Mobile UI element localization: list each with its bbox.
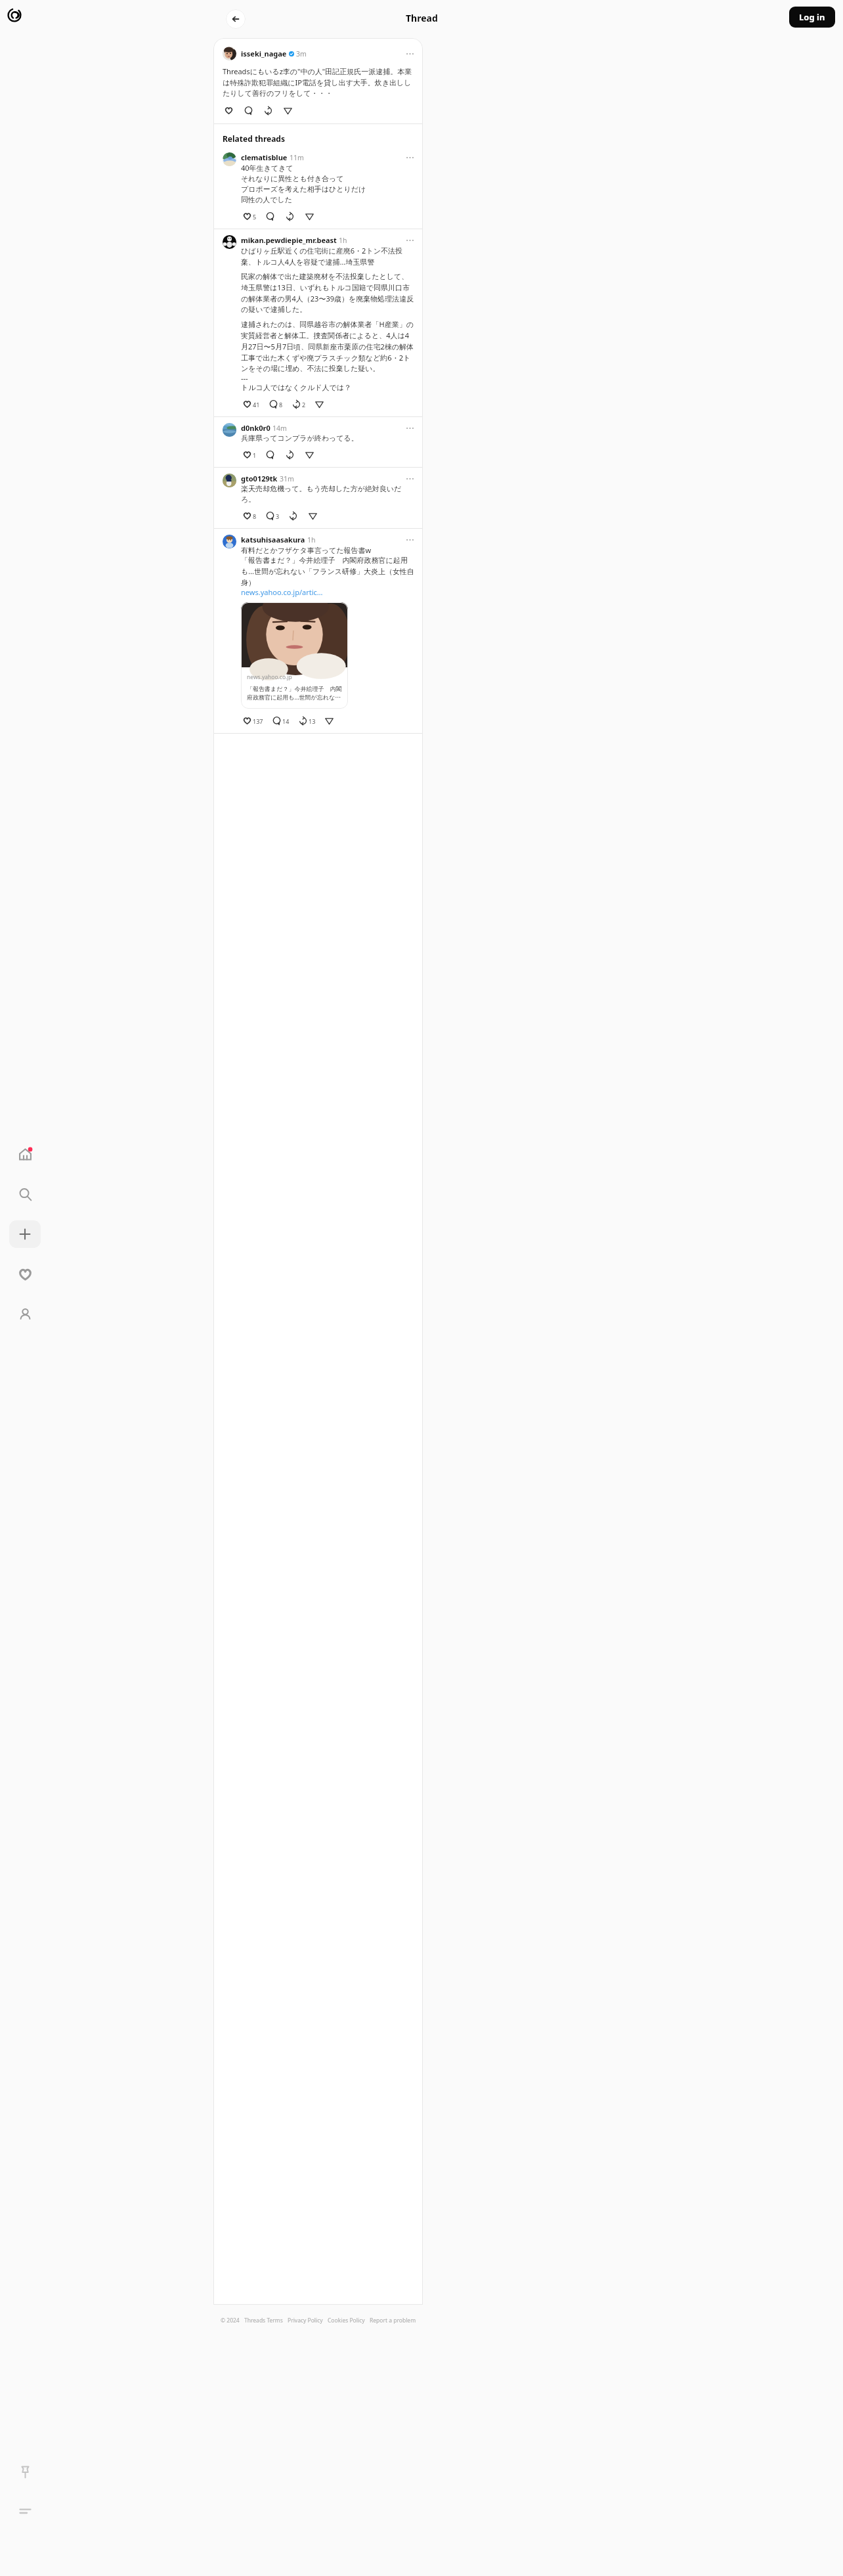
staticText: Thread	[406, 12, 438, 24]
button[interactable]: Reply	[270, 715, 292, 727]
staticText: Related threads	[223, 133, 285, 144]
staticText: © 2024	[221, 2317, 240, 2324]
staticText: isseki_nagae	[241, 49, 287, 58]
button[interactable]: Create	[9, 1220, 41, 1248]
staticText: 1h	[339, 236, 347, 245]
staticText: Log in	[799, 11, 825, 23]
staticText: 40年生きてきて それなりに異性とも付き合って プロポーズを考えた相手はひとりだ…	[241, 163, 366, 204]
button[interactable]: Reply	[242, 104, 255, 117]
button[interactable]: Share	[307, 510, 319, 522]
staticText: 5	[253, 213, 257, 221]
button[interactable]: Like	[241, 398, 262, 411]
staticText: 逮捕されたのは、同県越谷市の解体業者「H産業」の実質経営者と解体工。捜査関係者に…	[241, 319, 415, 373]
staticText: news.yahoo.co.jp	[247, 673, 292, 681]
button[interactable]: More options	[404, 153, 415, 162]
button[interactable]: Reply	[264, 210, 276, 223]
staticText: 13	[309, 717, 316, 725]
staticText: ひばりヶ丘駅近くの住宅街に産廃6・2トン不法投棄、トルコ人4人を容疑で逮捕…埼玉…	[241, 246, 415, 267]
staticText: katsuhisaasakura	[241, 535, 305, 544]
staticText: 41	[253, 401, 260, 409]
button[interactable]: news.yahoo.co.jp	[241, 602, 348, 709]
button[interactable]: More options	[404, 535, 415, 544]
staticText: 1h	[307, 535, 316, 544]
button[interactable]: Activity	[9, 1260, 41, 1288]
staticText: 有料だとかフザケタ事言ってた報告書w	[241, 545, 372, 555]
button[interactable]: Share	[303, 449, 316, 461]
button[interactable]: Reply	[264, 510, 282, 522]
button[interactable]: Home	[9, 1140, 41, 1168]
button[interactable]: katsuhisaasakura	[213, 529, 423, 733]
staticText: 兵庫県ってコンプラが終わってる。	[241, 433, 358, 443]
button[interactable]: More options	[404, 236, 415, 245]
button[interactable]: Share	[323, 715, 335, 727]
staticText: 14m	[272, 424, 287, 433]
staticText: 11m	[290, 153, 304, 162]
staticText: Threadsにもいるz李の"中の人"田記正規氏一派逮捕。本業は特殊詐欺犯罪組織…	[223, 66, 415, 98]
button[interactable]: Share	[303, 210, 316, 223]
button[interactable]: gto0129tk	[213, 468, 423, 528]
button[interactable]: Share	[282, 104, 294, 117]
staticText: 1	[253, 451, 257, 459]
staticText: clematisblue	[241, 152, 288, 162]
button[interactable]: Repost	[290, 398, 308, 411]
staticText: 民家の解体で出た建築廃材を不法投棄したとして、埼玉県警は13日、いずれもトルコ国…	[241, 272, 415, 314]
staticText: 137	[253, 717, 263, 725]
button[interactable]: Report a problem	[370, 2317, 416, 2324]
button[interactable]: Back	[226, 9, 246, 29]
staticText: 3m	[296, 49, 307, 58]
button[interactable]: Reply	[264, 449, 276, 461]
button[interactable]: Repost	[284, 449, 296, 461]
button[interactable]: Search	[9, 1180, 41, 1208]
button[interactable]: More options	[404, 424, 415, 433]
button[interactable]: Like	[241, 210, 259, 223]
button[interactable]: Share	[313, 398, 326, 411]
button[interactable]: More options	[404, 49, 415, 58]
staticText: 「報告書まだ？」今井絵理子 内閣府政務官に起用も…世間が忘れない「フランス研修」…	[241, 555, 415, 587]
button[interactable]: Repost	[297, 715, 318, 727]
button[interactable]: Reply	[267, 398, 285, 411]
button[interactable]: Cookies Policy	[328, 2317, 365, 2324]
button[interactable]: Like	[241, 510, 259, 522]
staticText: 楽天売却危機って。もう売却した方が絶対良いだろ。	[241, 484, 415, 504]
button[interactable]: Repost	[262, 104, 274, 117]
staticText: ---	[241, 373, 248, 383]
button[interactable]: Repost	[284, 210, 296, 223]
staticText: トルコ人ではなくクルド人では？	[241, 383, 352, 392]
button[interactable]: Like	[241, 715, 265, 727]
staticText: d0nk0r0	[241, 423, 270, 433]
button[interactable]: Repost	[287, 510, 299, 522]
button[interactable]: Pin	[9, 2458, 41, 2485]
button[interactable]: d0nk0r0	[213, 417, 423, 467]
staticText: 8	[279, 401, 283, 409]
button[interactable]: news.yahoo.co.jp/artic…	[241, 587, 323, 597]
button[interactable]: Like	[241, 449, 259, 461]
button[interactable]: More	[9, 2497, 41, 2525]
button[interactable]: Like	[223, 104, 235, 117]
staticText: 2	[302, 401, 306, 409]
button[interactable]: Threads Terms	[244, 2317, 283, 2324]
staticText: 31m	[280, 474, 294, 483]
staticText: 8	[253, 512, 257, 520]
staticText: gto0129tk	[241, 474, 278, 483]
button[interactable]: Profile	[9, 1300, 41, 1328]
staticText: mikan.pewdiepie_mr.beast	[241, 235, 337, 245]
button[interactable]: mikan.pewdiepie_mr.beast	[213, 229, 423, 416]
staticText: 3	[276, 512, 280, 520]
button[interactable]: Privacy Policy	[288, 2317, 323, 2324]
staticText: 「報告書まだ？」今井絵理子 内閣府政務官に起用も…世間が忘れない「フランス研修」…	[247, 684, 342, 701]
button[interactable]: Threads home	[6, 7, 23, 24]
button[interactable]: More options	[404, 474, 415, 483]
button[interactable]: clematisblue	[213, 146, 423, 229]
staticText: 14	[282, 717, 290, 725]
button[interactable]: Log in	[789, 7, 835, 28]
